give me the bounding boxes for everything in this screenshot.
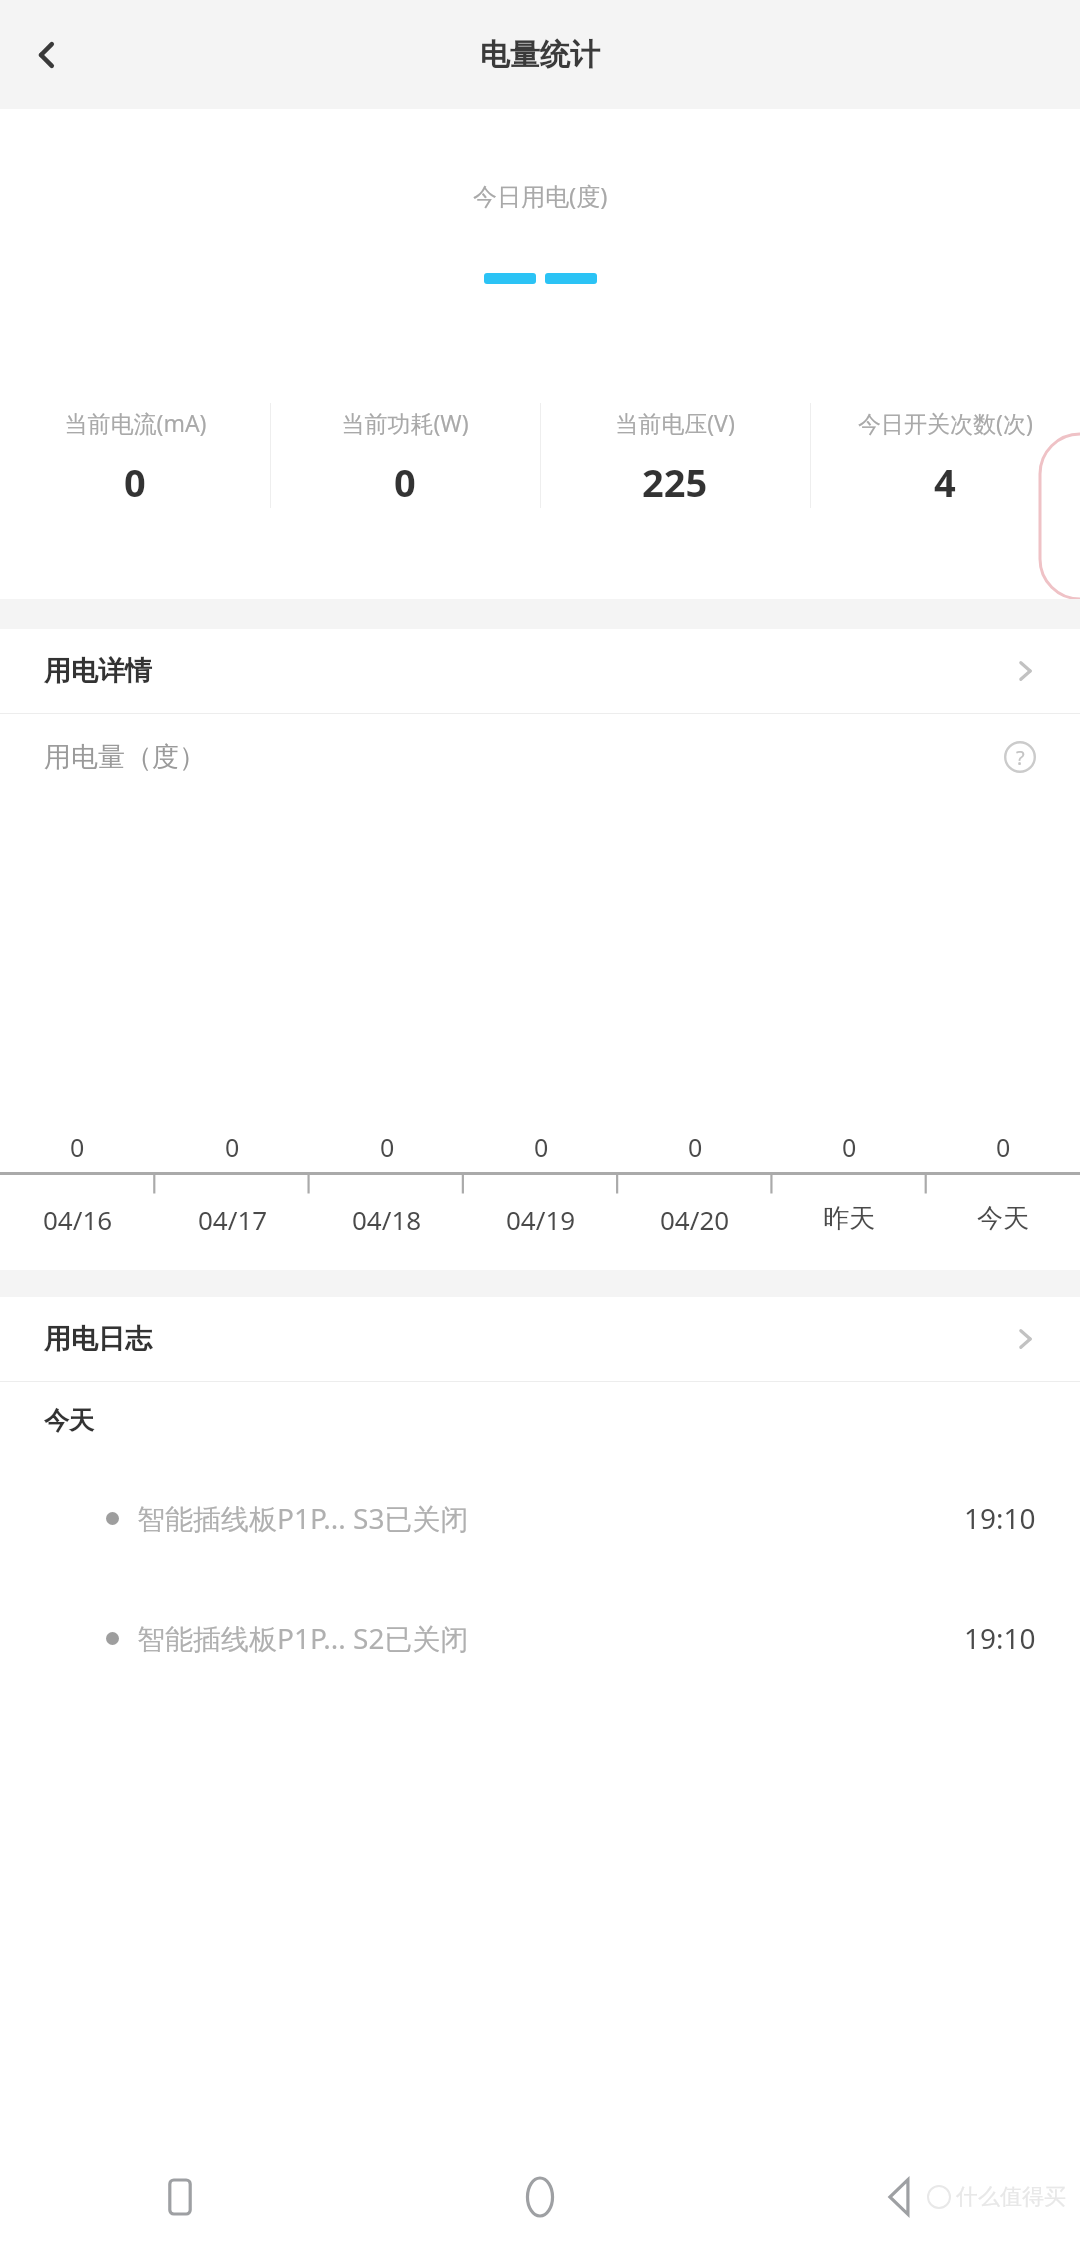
staticText: 0 [534, 1130, 549, 1164]
staticText: 0 [394, 456, 416, 508]
staticText: 0 [842, 1130, 857, 1164]
staticText: 智能插线板P1P... S2已关闭 [137, 1619, 469, 1657]
staticText: 0 [380, 1130, 395, 1164]
button[interactable]: 智能插线板P1P... S3已关闭 [0, 1458, 1080, 1578]
staticText: 19:10 [964, 1619, 1036, 1657]
staticText: 当前电压(V) [615, 407, 735, 438]
button[interactable]: 用电详情 [0, 629, 1080, 713]
button[interactable]: 主屏幕 [360, 2140, 720, 2254]
staticText: 今日开关次数(次) [858, 407, 1033, 438]
staticText: 电量统计 [480, 36, 600, 74]
button[interactable]: 用电日志 [0, 1297, 1080, 1381]
staticText: 用电日志 [44, 1322, 152, 1356]
staticText: 智能插线板P1P... S3已关闭 [137, 1499, 469, 1537]
staticText: 04/20 [660, 1202, 730, 1237]
staticText: 0 [70, 1130, 85, 1164]
staticText: 今天 [44, 1405, 94, 1436]
button[interactable]: 最近任务 [0, 2140, 360, 2254]
staticText: 04/19 [506, 1202, 576, 1237]
staticText: 0 [996, 1130, 1011, 1164]
staticText: ? [1016, 744, 1025, 771]
staticText: 今日用电(度) [473, 179, 608, 212]
staticText: 昨天 [823, 1202, 875, 1235]
staticText: 04/18 [352, 1202, 422, 1237]
staticText: 当前功耗(W) [341, 407, 469, 438]
staticText: 今天 [977, 1202, 1029, 1235]
staticText: 当前电流(mA) [64, 407, 207, 438]
staticText: 19:10 [964, 1499, 1036, 1537]
staticText: 用电量（度） [44, 740, 206, 774]
button[interactable]: 智能插线板P1P... S2已关闭 [0, 1578, 1080, 1698]
staticText: 0 [124, 456, 146, 508]
staticText: 0 [225, 1130, 240, 1164]
staticText: 04/17 [198, 1202, 268, 1237]
staticText: 用电详情 [44, 654, 152, 688]
button[interactable]: 返回 [720, 2140, 1080, 2254]
staticText: 04/16 [43, 1202, 113, 1237]
staticText: 0 [688, 1130, 703, 1164]
button[interactable]: 返回 [16, 24, 78, 86]
button[interactable]: 帮助 [1002, 739, 1038, 775]
staticText: 4 [934, 456, 956, 508]
staticText: 什么值得买 [956, 2183, 1066, 2211]
staticText: 225 [642, 456, 708, 508]
